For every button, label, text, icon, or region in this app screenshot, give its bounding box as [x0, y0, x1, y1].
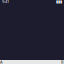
- staticText: B: [61, 59, 64, 64]
- staticText: 9:41: [2, 0, 9, 4]
- staticText: A: [0, 59, 3, 64]
- staticText: ▮▮▮: [56, 0, 62, 4]
